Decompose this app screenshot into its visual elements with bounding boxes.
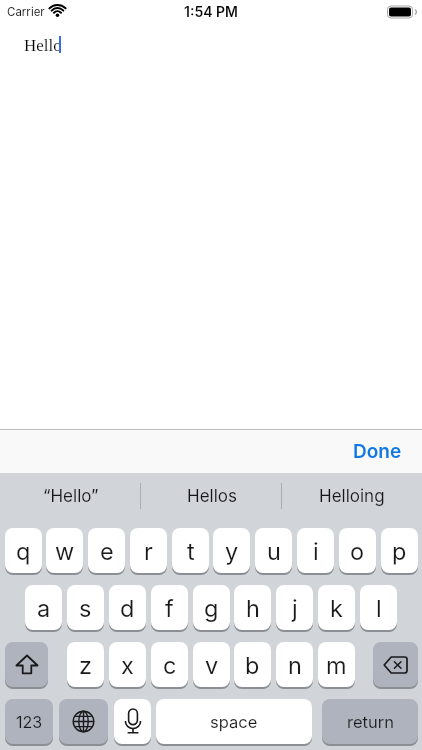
staticText: a: [37, 594, 51, 622]
staticText: r: [144, 537, 153, 565]
staticText: p: [392, 537, 407, 565]
button[interactable]: 123: [5, 699, 53, 744]
staticText: Helloing: [319, 486, 385, 507]
button[interactable]: m: [318, 642, 355, 687]
button[interactable]: t: [172, 528, 209, 573]
button[interactable]: u: [255, 528, 292, 573]
staticText: v: [205, 651, 219, 679]
button[interactable]: i: [297, 528, 334, 573]
button[interactable]: y: [213, 528, 250, 573]
staticText: d: [120, 594, 135, 622]
button[interactable]: l: [360, 585, 397, 630]
staticText: l: [376, 594, 382, 622]
button[interactable]: p: [381, 528, 418, 573]
staticText: t: [187, 537, 195, 565]
button[interactable]: k: [318, 585, 355, 630]
button[interactable]: Hellos: [141, 473, 282, 520]
button[interactable]: h: [234, 585, 271, 630]
button[interactable]: q: [5, 528, 42, 573]
staticText: z: [79, 651, 92, 679]
staticText: return: [347, 712, 394, 732]
staticText: “Hello”: [43, 486, 99, 507]
staticText: n: [288, 651, 302, 679]
staticText: u: [267, 537, 281, 565]
staticText: f: [165, 594, 174, 622]
staticText: e: [100, 537, 114, 565]
button[interactable]: f: [151, 585, 188, 630]
button[interactable]: v: [193, 642, 230, 687]
button[interactable]: Done: [373, 440, 422, 463]
button[interactable]: [5, 642, 48, 687]
staticText: space: [210, 712, 258, 732]
button[interactable]: r: [130, 528, 167, 573]
staticText: m: [326, 651, 347, 679]
staticText: y: [225, 537, 239, 565]
button[interactable]: z: [67, 642, 104, 687]
staticText: i: [313, 537, 319, 565]
staticText: s: [79, 594, 92, 622]
staticText: Hellos: [187, 486, 237, 507]
staticText: Done: [353, 440, 402, 463]
button[interactable]: s: [67, 585, 104, 630]
button[interactable]: o: [339, 528, 376, 573]
staticText: h: [246, 594, 260, 622]
staticText: Hello: [24, 36, 62, 55]
button[interactable]: “Hello”: [0, 473, 141, 520]
staticText: b: [245, 651, 260, 679]
button[interactable]: b: [234, 642, 271, 687]
staticText: Carrier: [7, 5, 45, 19]
staticText: x: [121, 651, 134, 679]
button[interactable]: Helloing: [281, 473, 422, 520]
button[interactable]: [114, 699, 151, 744]
staticText: 123: [16, 712, 43, 731]
staticText: o: [350, 537, 365, 565]
button[interactable]: j: [276, 585, 313, 630]
button[interactable]: [59, 699, 108, 744]
staticText: j: [292, 594, 298, 622]
staticText: w: [55, 537, 75, 565]
button[interactable]: x: [109, 642, 146, 687]
button[interactable]: space: [156, 699, 312, 744]
button[interactable]: n: [276, 642, 313, 687]
staticText: k: [330, 594, 343, 622]
button[interactable]: a: [25, 585, 62, 630]
button[interactable]: [373, 642, 418, 687]
staticText: q: [16, 537, 31, 565]
button[interactable]: w: [46, 528, 83, 573]
button[interactable]: c: [151, 642, 188, 687]
staticText: 1:54 PM: [184, 3, 238, 20]
button[interactable]: e: [88, 528, 125, 573]
button[interactable]: return: [322, 699, 418, 744]
staticText: g: [204, 594, 219, 622]
button[interactable]: d: [109, 585, 146, 630]
staticText: c: [163, 651, 177, 679]
button[interactable]: g: [193, 585, 230, 630]
